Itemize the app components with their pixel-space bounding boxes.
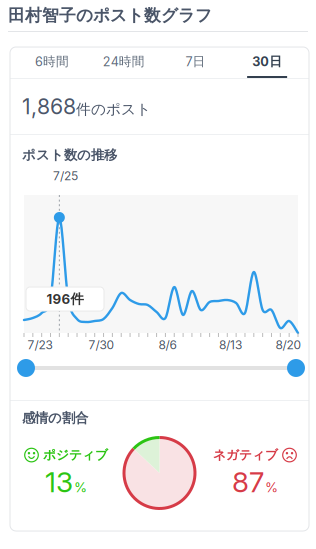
staticText: 196件	[46, 291, 83, 307]
staticText: 24時間	[103, 53, 145, 69]
staticText: 件のポスト	[76, 100, 151, 119]
staticText: 7日	[185, 53, 205, 69]
staticText: 田村智子のポスト数グラフ	[8, 5, 212, 26]
button[interactable]: 30日	[231, 47, 303, 78]
staticText: ネガティブ	[213, 447, 278, 463]
staticText: 8/20	[275, 338, 301, 352]
staticText: ポスト数の推移	[22, 147, 117, 163]
button[interactable]: Range start	[17, 359, 35, 377]
staticText: 13	[45, 465, 73, 499]
staticText: 6時間	[35, 53, 69, 69]
staticText: 7/30	[88, 338, 114, 352]
staticText: 感情の割合	[22, 410, 88, 426]
staticText: 1,868	[22, 94, 76, 119]
staticText: ポジティブ	[43, 447, 108, 463]
button[interactable]: 6時間	[16, 47, 88, 78]
button[interactable]: Range end	[287, 359, 305, 377]
button[interactable]: 7日	[159, 47, 231, 78]
staticText: 7/25	[53, 169, 78, 183]
staticText: 7/23	[27, 338, 52, 352]
staticText: 87	[232, 465, 264, 499]
staticText: 8/6	[158, 338, 176, 352]
staticText: %	[265, 479, 278, 495]
staticText: 8/13	[219, 338, 242, 352]
staticText: 30日	[252, 53, 282, 69]
button[interactable]: 24時間	[88, 47, 160, 78]
staticText: %	[74, 479, 87, 495]
